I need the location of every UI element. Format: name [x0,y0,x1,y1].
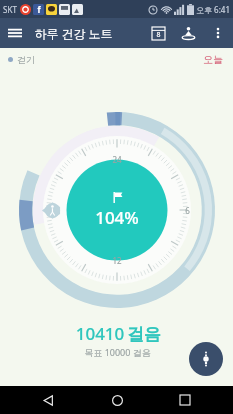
button[interactable]: Open navigation drawer [0,18,30,48]
staticText: 104% [95,206,139,229]
staticText: 오늘 [203,53,223,66]
staticText: f [37,4,41,15]
button[interactable]: Calendar [143,18,173,48]
staticText: 24 [112,154,122,165]
staticText: 걸음 [127,324,161,345]
button[interactable]: Back [28,386,68,414]
button[interactable]: Current activity marker [42,201,61,220]
staticText: 6 [185,205,190,216]
staticText: 12 [112,255,122,266]
staticText: 8 [156,30,161,40]
button[interactable]: Recent apps [165,386,205,414]
staticText: 10410 [73,322,127,345]
staticText: 18 [44,205,54,216]
button[interactable]: More options [203,18,233,48]
button[interactable]: 오늘 [203,53,223,66]
button[interactable]: Location tracking [173,18,203,48]
button[interactable]: Add entry [189,342,223,376]
staticText: 오후 6:41 [196,4,230,15]
staticText: SKT [3,4,17,15]
staticText: 하루 건강 노트 [34,25,113,41]
button[interactable]: 24 [19,112,215,308]
button[interactable]: Home [97,386,137,414]
staticText: 목표 10000 걸음 [84,346,151,358]
button[interactable]: 걷기 [8,54,35,65]
staticText: 걷기 [17,54,35,65]
